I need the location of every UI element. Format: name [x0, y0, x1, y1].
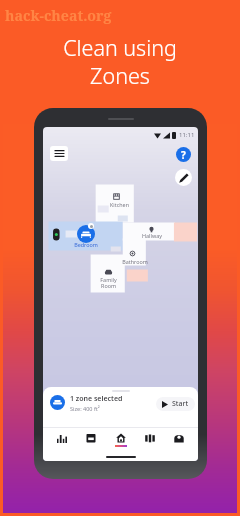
staticText: ?: [181, 148, 186, 162]
button[interactable]: Start: [156, 397, 195, 411]
staticText: Start: [172, 399, 189, 409]
staticText: Size: 400 ft²: [70, 405, 100, 412]
staticText: Room: [101, 282, 116, 289]
staticText: Family: [100, 276, 117, 283]
button[interactable]: Schedule: [81, 432, 101, 444]
staticText: Kitchen: [110, 201, 129, 208]
staticText: Bathroom: [122, 258, 148, 265]
button[interactable]: Map: [140, 432, 160, 444]
button[interactable]: Home: [110, 432, 132, 448]
staticText: 11:11: [179, 131, 195, 139]
staticText: hack-cheat.org: [5, 6, 112, 25]
button[interactable]: Edit: [175, 169, 192, 186]
staticText: 1 zone selected: [70, 394, 123, 404]
staticText: Hallway: [142, 232, 162, 239]
staticText: Clean using Zones: [0, 33, 240, 90]
button[interactable]: Menu: [50, 146, 68, 161]
staticText: Bedroom: [74, 241, 98, 248]
button[interactable]: Settings: [169, 432, 189, 444]
button[interactable]: Statistics: [52, 432, 72, 444]
button[interactable]: Help: [176, 147, 191, 162]
